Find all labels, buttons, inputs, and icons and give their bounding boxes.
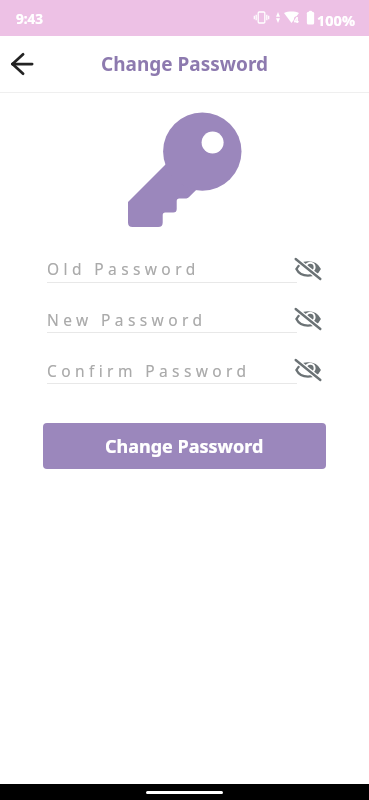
- staticText: 4: [294, 14, 299, 25]
- button[interactable]: Back: [6, 48, 38, 80]
- button[interactable]: Toggle password visibility: [295, 259, 321, 279]
- staticText: 9:43: [16, 10, 43, 28]
- button[interactable]: Toggle password visibility: [295, 309, 321, 329]
- staticText: Old Password: [47, 258, 200, 279]
- staticText: New Password: [47, 309, 207, 330]
- staticText: 100%: [317, 10, 355, 30]
- staticText: Change Password: [105, 434, 264, 459]
- button[interactable]: Change Password: [43, 423, 326, 469]
- staticText: Change Password: [101, 51, 269, 77]
- staticText: Confirm Password: [47, 360, 251, 381]
- button[interactable]: Toggle password visibility: [295, 360, 321, 380]
